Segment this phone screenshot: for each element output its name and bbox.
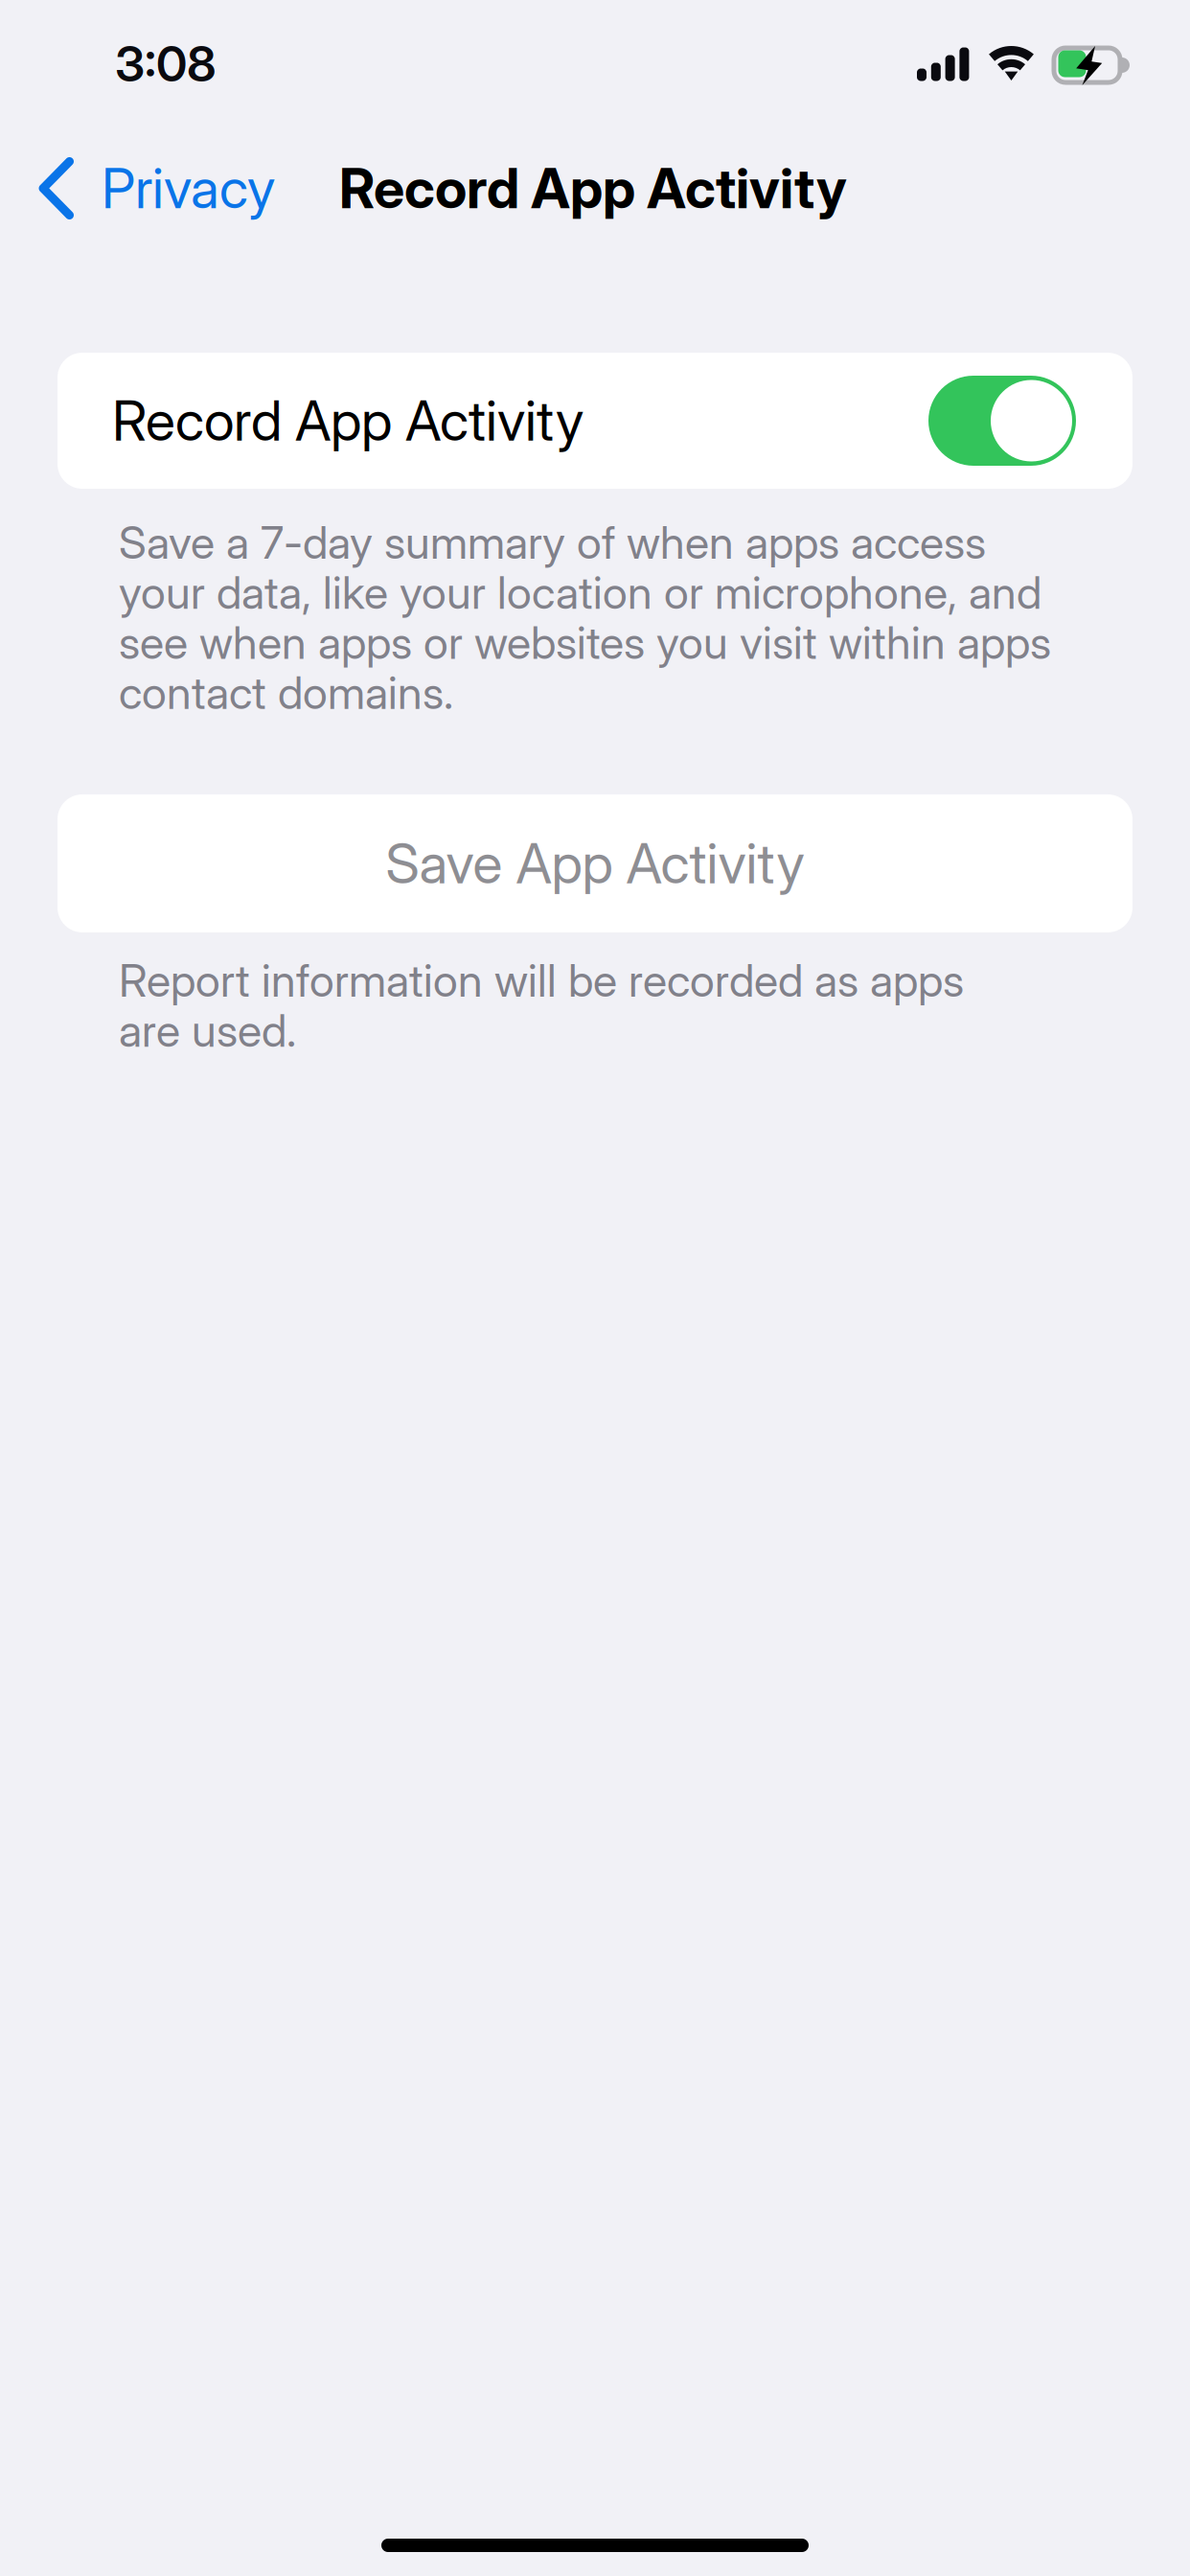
staticText: Privacy <box>102 155 275 222</box>
button[interactable]: 1 <box>57 353 1133 489</box>
staticText: Save a 7-day summary of when apps access… <box>119 517 1051 718</box>
button[interactable]: Privacy <box>0 142 294 235</box>
staticText: Report information will be recorded as a… <box>119 955 964 1056</box>
staticText: 3:08 <box>115 34 217 93</box>
staticText: Save App Activity <box>386 830 804 897</box>
button[interactable]: Save App Activity <box>57 794 1133 932</box>
staticText: Record App Activity <box>112 387 584 454</box>
staticText: Record App Activity <box>339 155 847 222</box>
